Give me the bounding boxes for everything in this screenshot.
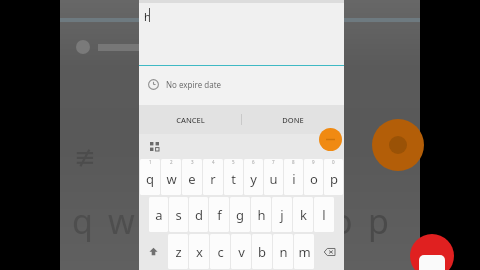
staticText: 4 [212,159,215,165]
button[interactable]: c [210,234,230,269]
staticText: o [332,198,353,244]
staticText: DONE [282,115,304,125]
button[interactable]: f [209,197,229,232]
staticText: o [310,170,318,188]
staticText: q [146,170,154,188]
staticText: 8 [292,159,295,165]
staticText: p [330,170,338,188]
staticText: w [166,170,177,188]
button[interactable]: v [231,234,251,269]
button[interactable]: Search [318,137,336,155]
button[interactable]: a [149,197,168,232]
button[interactable]: l [314,197,334,232]
button[interactable]: No expire date [139,66,344,102]
staticText: ≢ [74,142,96,172]
staticText: x [196,243,203,261]
button[interactable]: b [252,234,272,269]
staticText: z [175,243,182,261]
button[interactable]: j [272,197,292,232]
button[interactable]: z [168,234,188,269]
staticText: k [300,206,307,224]
staticText: w [108,198,135,244]
staticText: r [210,170,216,188]
staticText: g [236,206,244,224]
button[interactable]: h [251,197,271,232]
staticText: 7 [272,159,275,165]
staticText: h [144,9,151,24]
button[interactable]: h [139,0,344,66]
button[interactable]: 0 [324,159,343,195]
staticText: h [257,206,266,224]
button[interactable]: Shift [140,233,167,270]
staticText: y [250,170,257,188]
button[interactable]: n [273,234,293,269]
button[interactable]: DONE [242,105,344,134]
staticText: 2 [170,159,173,165]
staticText: a [155,206,163,224]
button[interactable]: 1 [140,159,160,195]
staticText: q [72,198,93,244]
button[interactable]: 7 [264,159,283,195]
staticText: m [298,243,311,261]
button[interactable]: 6 [244,159,263,195]
staticText: e [188,170,196,188]
staticText: l [322,206,326,224]
button[interactable]: 8 [284,159,303,195]
staticText: p [368,198,389,244]
staticText: 6 [252,159,255,165]
button[interactable]: 9 [304,159,323,195]
staticText: t [231,170,236,188]
staticText: 1 [149,159,152,165]
staticText: s [175,206,182,224]
staticText: b [258,243,266,261]
button[interactable]: 5 [224,159,243,195]
button[interactable]: 2 [161,159,181,195]
staticText: n [279,243,288,261]
staticText: c [217,243,224,261]
button[interactable]: x [189,234,209,269]
button[interactable]: Add [319,128,342,151]
button[interactable]: CANCEL [139,105,241,134]
staticText: 9 [312,159,315,165]
button[interactable]: 4 [203,159,223,195]
staticText: CANCEL [176,115,205,125]
staticText: 5 [232,159,235,165]
button[interactable]: k [293,197,313,232]
button[interactable]: g [230,197,250,232]
button[interactable]: m [294,234,314,269]
staticText: 3 [191,159,194,165]
button[interactable]: Recorder [410,234,454,270]
button[interactable]: d [189,197,208,232]
button[interactable]: s [169,197,188,232]
staticText: 0 [332,159,335,165]
staticText: v [238,243,245,261]
staticText: u [269,170,278,188]
staticText: j [280,206,284,224]
button[interactable]: Backspace [315,233,343,270]
button[interactable]: Keyboard modes [145,137,163,155]
staticText: No expire date [166,79,222,90]
staticText: f [217,206,222,224]
staticText: d [195,206,203,224]
button[interactable]: 3 [182,159,202,195]
staticText: i [292,170,296,188]
